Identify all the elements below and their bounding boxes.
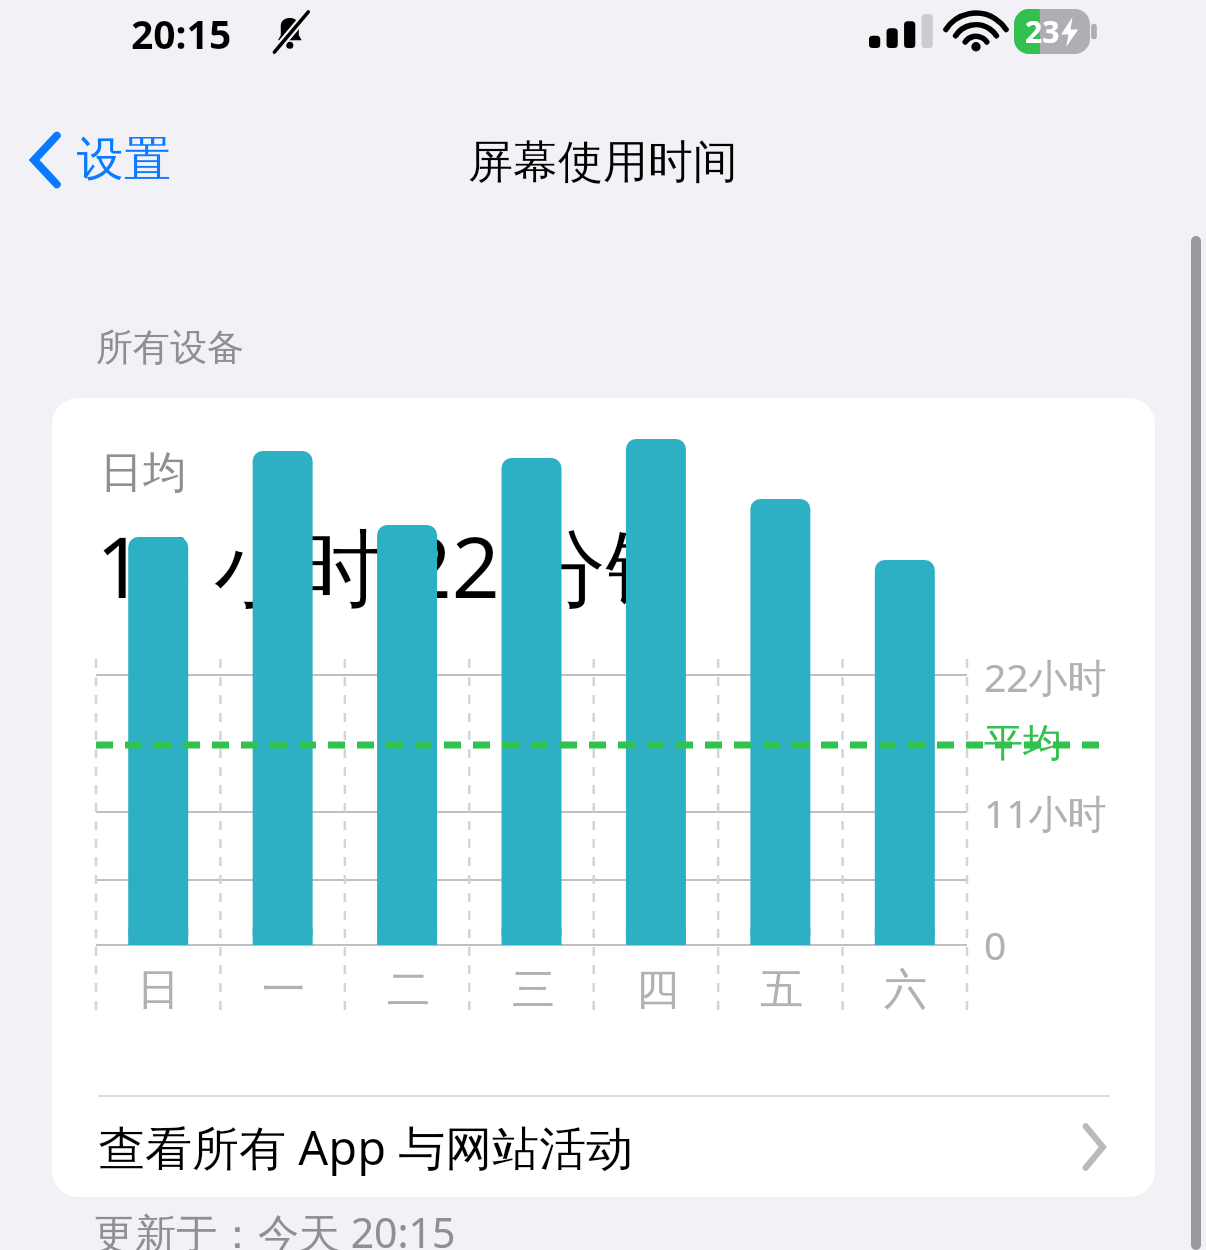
- staticText: 所有设备: [96, 324, 244, 371]
- staticText: 22小时: [984, 650, 1107, 703]
- staticText: 16 小时 22 分钟: [96, 508, 690, 623]
- staticText: 屏幕使用时间: [468, 134, 738, 191]
- other: Silent mode: [270, 9, 314, 55]
- staticText: 五: [760, 963, 803, 1017]
- staticText: 日: [137, 963, 180, 1017]
- button[interactable]: 设置: [20, 124, 179, 195]
- staticText: 设置: [77, 130, 171, 189]
- staticText: 二: [387, 963, 430, 1017]
- staticText: 日均: [100, 446, 186, 500]
- button[interactable]: 查看所有 App 与网站活动: [52, 1097, 1155, 1197]
- staticText: 一: [262, 963, 305, 1017]
- staticText: 20:15: [131, 7, 232, 60]
- staticText: 0: [984, 918, 1007, 971]
- staticText: 11小时: [984, 786, 1107, 839]
- staticText: 查看所有 App 与网站活动: [98, 1115, 634, 1179]
- staticText: 四: [636, 963, 679, 1017]
- staticText: 平均: [984, 718, 1062, 767]
- staticText: 23: [1025, 11, 1060, 52]
- staticText: 三: [512, 963, 555, 1017]
- staticText: 六: [884, 963, 927, 1017]
- staticText: 更新于：今天 20:15: [94, 1204, 456, 1250]
